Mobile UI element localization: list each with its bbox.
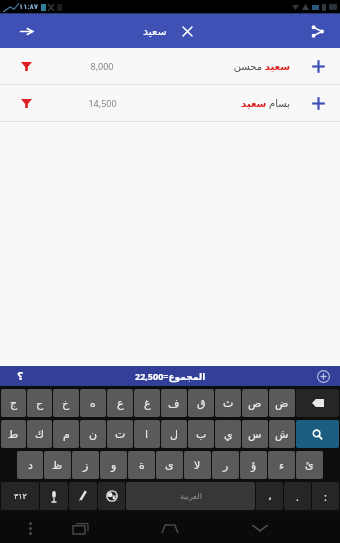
button[interactable]: ط	[1, 420, 26, 448]
button[interactable]: Submit search	[0, 14, 52, 48]
button[interactable]: Menu	[0, 513, 60, 543]
button[interactable]: س	[242, 420, 268, 448]
button[interactable]: ء	[268, 451, 295, 479]
button[interactable]: ة	[128, 451, 155, 479]
button[interactable]: ٣١٢	[1, 482, 39, 510]
staticText: ء	[279, 459, 285, 472]
button[interactable]: العربية	[126, 482, 255, 510]
staticText: ٣١٢	[14, 492, 27, 501]
button[interactable]: ث	[215, 389, 241, 417]
button[interactable]: Recents	[63, 513, 97, 543]
staticText: سعيد	[143, 25, 167, 38]
staticText: ف	[168, 397, 180, 410]
staticText: ا	[145, 428, 149, 441]
staticText: س	[248, 428, 262, 441]
staticText: ب	[196, 428, 207, 441]
staticText: ل	[170, 428, 178, 441]
button[interactable]: Change language	[98, 482, 125, 510]
button[interactable]: Help	[0, 366, 40, 386]
button[interactable]: Filter	[0, 48, 340, 84]
staticText: ئ	[305, 459, 314, 472]
button[interactable]: ﻻ	[184, 451, 211, 479]
button[interactable]: و	[100, 451, 127, 479]
button[interactable]: Filter	[0, 85, 340, 121]
button[interactable]: ز	[72, 451, 99, 479]
staticText: العربية	[180, 492, 202, 501]
staticText: ض	[275, 397, 289, 410]
button[interactable]: ص	[242, 389, 268, 417]
button[interactable]: ه	[80, 389, 106, 417]
staticText: ى	[165, 459, 174, 472]
staticText: ص	[248, 397, 262, 410]
button[interactable]: ى	[156, 451, 183, 479]
button[interactable]: ك	[27, 420, 52, 448]
staticText: ش	[275, 428, 289, 441]
staticText: و	[111, 459, 117, 472]
button[interactable]: ظ	[44, 451, 71, 479]
staticText: ر	[223, 459, 229, 472]
staticText: .	[296, 489, 299, 504]
button[interactable]: ؤ	[240, 451, 267, 479]
button[interactable]: ج	[1, 389, 26, 417]
staticText: ج	[10, 397, 18, 410]
button[interactable]: Filter	[0, 85, 52, 121]
button[interactable]: Add	[296, 48, 340, 84]
button[interactable]: .	[284, 482, 311, 510]
staticText: ﻻ	[194, 459, 201, 472]
button[interactable]: ت	[107, 420, 133, 448]
button[interactable]: د	[17, 451, 43, 479]
button[interactable]: ئ	[296, 451, 323, 479]
staticText: ه	[90, 397, 96, 410]
button[interactable]: Backspace	[296, 389, 339, 417]
staticText: ح	[36, 397, 44, 410]
button[interactable]: Clear search	[177, 21, 197, 41]
staticText: غ	[144, 397, 151, 410]
staticText: ظ	[52, 459, 63, 472]
button[interactable]: ق	[188, 389, 214, 417]
staticText: خ	[62, 397, 70, 410]
staticText: بسام سعيد	[241, 96, 290, 110]
button[interactable]: م	[53, 420, 79, 448]
staticText: 8,000	[90, 60, 114, 72]
staticText: :	[324, 489, 327, 504]
staticText: ؟	[17, 370, 24, 383]
button[interactable]: Share	[294, 14, 340, 48]
button[interactable]: ح	[27, 389, 52, 417]
staticText: ع	[117, 397, 124, 410]
button[interactable]: ع	[107, 389, 133, 417]
button[interactable]: Voice input	[40, 482, 68, 510]
button[interactable]: Filter	[0, 48, 52, 84]
staticText: د	[28, 459, 33, 472]
staticText: م	[63, 428, 70, 441]
staticText: ة	[139, 459, 145, 472]
button[interactable]: ض	[269, 389, 295, 417]
button[interactable]: Add	[296, 85, 340, 121]
button[interactable]: :	[312, 482, 339, 510]
button[interactable]: Add entry	[306, 366, 340, 386]
button[interactable]: ،	[256, 482, 283, 510]
staticText: المجموع=22,500	[135, 370, 206, 382]
button[interactable]: ا	[134, 420, 160, 448]
button[interactable]: ي	[215, 420, 241, 448]
button[interactable]: ف	[161, 389, 187, 417]
staticText: ؤ	[251, 459, 257, 472]
button[interactable]: غ	[134, 389, 160, 417]
button[interactable]: ر	[212, 451, 239, 479]
staticText: ز	[83, 459, 89, 472]
button[interactable]: خ	[53, 389, 79, 417]
button[interactable]: Home	[153, 513, 187, 543]
button[interactable]: ن	[80, 420, 106, 448]
staticText: ،	[268, 490, 272, 503]
button[interactable]: Hide keyboard	[243, 513, 277, 543]
staticText: ن	[89, 428, 98, 441]
staticText: ي	[224, 428, 233, 441]
button[interactable]: Handwriting	[69, 482, 97, 510]
button[interactable]: Search	[296, 420, 339, 448]
staticText: ث	[223, 397, 234, 410]
staticText: ك	[35, 428, 45, 441]
staticText: سعيد محسن	[233, 59, 290, 73]
button[interactable]: ل	[161, 420, 187, 448]
staticText: ١١:٨٧	[19, 2, 39, 12]
button[interactable]: ش	[269, 420, 295, 448]
button[interactable]: ب	[188, 420, 214, 448]
